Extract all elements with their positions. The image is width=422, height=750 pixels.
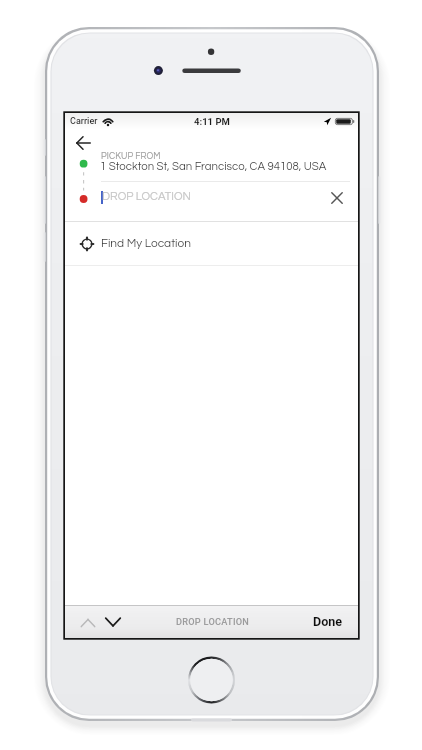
button[interactable]: Previous field bbox=[77, 613, 99, 633]
button[interactable] bbox=[65, 182, 358, 221]
staticText: Carrier bbox=[70, 116, 98, 127]
staticText: 4:11 PM bbox=[194, 116, 230, 127]
staticText: PICKUP FROM bbox=[101, 152, 161, 161]
staticText: 1 Stockton St, San Francisco, CA 94108, … bbox=[100, 161, 327, 173]
button[interactable]: Clear drop location bbox=[325, 186, 349, 210]
staticText: Done bbox=[313, 614, 343, 629]
staticText: Find My Location bbox=[101, 237, 191, 249]
button[interactable]: Done bbox=[304, 608, 352, 635]
staticText: DROP LOCATION bbox=[176, 616, 250, 627]
button[interactable]: Back bbox=[76, 133, 91, 153]
button[interactable] bbox=[65, 222, 358, 265]
staticText: DROP LOCATION bbox=[102, 191, 191, 203]
button[interactable] bbox=[65, 137, 358, 181]
button[interactable]: Next field bbox=[102, 612, 124, 632]
